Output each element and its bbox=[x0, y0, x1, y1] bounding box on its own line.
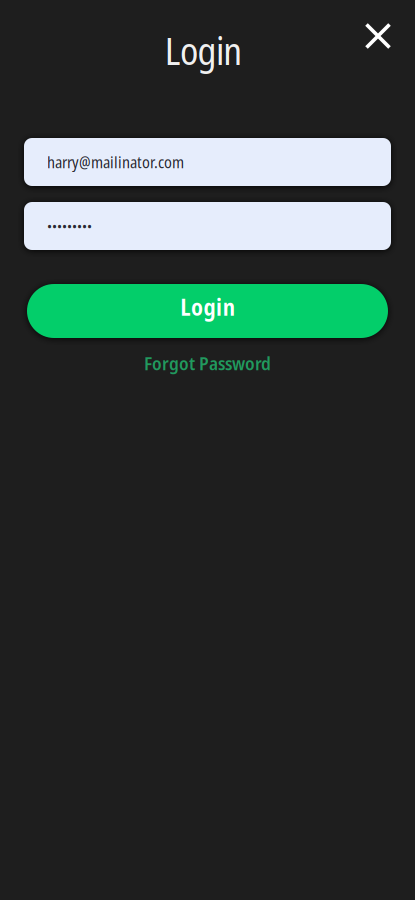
button[interactable]: Forgot Password bbox=[144, 352, 271, 374]
button[interactable]: Close bbox=[356, 14, 400, 58]
button[interactable]: Email bbox=[24, 138, 391, 186]
staticText: Login bbox=[180, 292, 235, 322]
button[interactable]: Password bbox=[24, 202, 391, 250]
button[interactable]: Login bbox=[27, 284, 388, 338]
staticText: Forgot Password bbox=[144, 350, 271, 376]
staticText: ••••••••• bbox=[47, 217, 92, 235]
staticText: Login bbox=[165, 25, 242, 76]
staticText: harry@mailinator.com bbox=[47, 151, 184, 173]
